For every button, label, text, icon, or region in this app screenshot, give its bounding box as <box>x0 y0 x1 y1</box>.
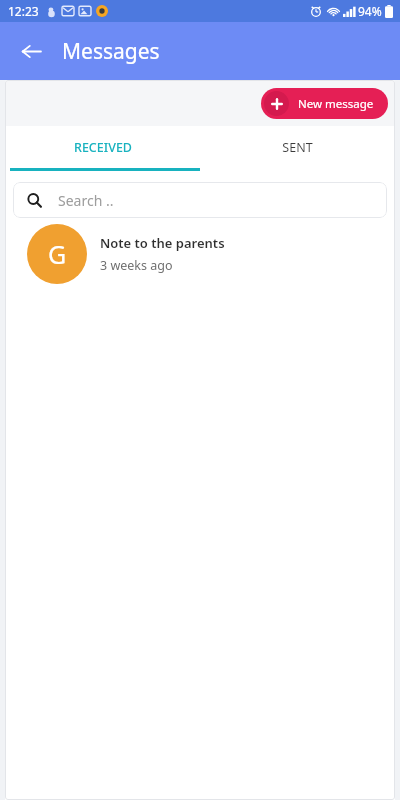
staticText: G <box>48 237 67 271</box>
button[interactable]: New message <box>261 88 388 119</box>
staticText: 12:23 <box>8 3 39 19</box>
button[interactable]: Back <box>10 30 52 72</box>
button[interactable]: G <box>5 218 395 290</box>
staticText: 3 weeks ago <box>100 257 173 274</box>
staticText: Messages <box>62 37 160 66</box>
button[interactable]: RECEIVED <box>5 126 200 168</box>
staticText: SENT <box>282 139 313 156</box>
staticText: RECEIVED <box>74 139 132 156</box>
staticText: 94% <box>358 3 382 19</box>
staticText: Note to the parents <box>100 234 225 252</box>
button[interactable]: Search .. <box>13 182 387 218</box>
button[interactable]: SENT <box>200 126 395 168</box>
staticText: New message <box>298 96 374 112</box>
staticText: Search .. <box>58 191 114 210</box>
